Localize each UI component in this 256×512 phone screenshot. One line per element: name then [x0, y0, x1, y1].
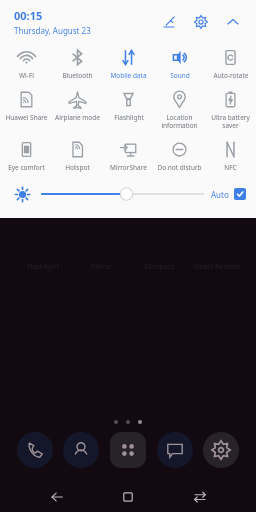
button[interactable]: Brightness	[12, 184, 32, 204]
staticText: Bluetooth	[62, 71, 93, 80]
staticText: Smart Remote	[193, 262, 241, 272]
staticText: Compass	[144, 262, 175, 272]
button[interactable]: Collapse	[222, 11, 244, 33]
staticText: 00:15	[14, 8, 43, 23]
staticText: Eye comfort	[8, 163, 45, 172]
button[interactable]: Wi-Fi	[0, 46, 52, 82]
button[interactable]: Auto	[211, 188, 246, 200]
staticText: NFC	[224, 163, 237, 172]
staticText: Hotspot	[65, 163, 90, 172]
button[interactable]: Edit	[158, 11, 180, 33]
staticText: Flashlight	[27, 262, 59, 272]
staticText: Flashlight	[114, 113, 144, 122]
button[interactable]: Flashlight	[103, 88, 154, 124]
staticText: Sound	[170, 71, 190, 80]
button[interactable]	[42, 184, 203, 204]
button[interactable]: Auto-rotate	[205, 46, 256, 82]
button[interactable]: Do not disturb	[154, 138, 205, 174]
staticText: Wi-Fi	[19, 71, 34, 80]
button[interactable]: App	[110, 432, 146, 468]
button[interactable]: MirrorShare	[103, 138, 154, 174]
button[interactable]: Location information	[154, 88, 205, 132]
button[interactable]: App	[17, 432, 53, 468]
button[interactable]: Airplane mode	[52, 88, 103, 124]
button[interactable]: Back	[42, 486, 72, 508]
button[interactable]: Hotspot	[52, 138, 103, 174]
staticText: Airplane mode	[55, 113, 100, 122]
staticText: Mirror	[91, 262, 112, 272]
button[interactable]: App	[63, 432, 99, 468]
button[interactable]: Ultra battery saver	[205, 88, 256, 132]
staticText: Huawei Share	[5, 113, 48, 122]
staticText: Auto-rotate	[213, 71, 249, 80]
staticText: Mobile data	[110, 71, 147, 80]
button[interactable]: Home	[113, 486, 143, 508]
button[interactable]: Mobile data	[103, 46, 154, 82]
staticText: Do not disturb	[157, 163, 202, 172]
button[interactable]: Huawei Share	[0, 88, 52, 124]
button[interactable]: App	[157, 432, 193, 468]
staticText: Ultra battery saver	[211, 113, 250, 130]
button[interactable]: Sound	[154, 46, 205, 82]
button[interactable]: Bluetooth	[52, 46, 103, 82]
button[interactable]: Settings	[190, 11, 212, 33]
staticText: Auto	[211, 189, 229, 200]
button[interactable]: Recents	[185, 486, 215, 508]
button[interactable]: NFC	[205, 138, 256, 174]
staticText: Thursday, August 23	[14, 25, 91, 36]
staticText: MirrorShare	[110, 163, 147, 172]
button[interactable]: Eye comfort	[0, 138, 52, 174]
staticText: Location information	[161, 113, 198, 130]
button[interactable]: App	[203, 432, 239, 468]
